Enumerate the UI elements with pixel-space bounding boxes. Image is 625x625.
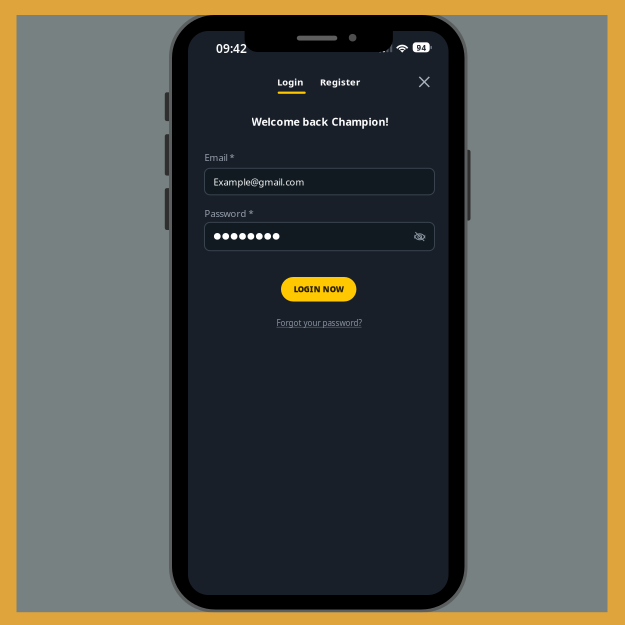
button[interactable]: Forgot your password?: [276, 317, 362, 328]
staticText: 94: [416, 42, 426, 53]
button[interactable]: Login: [276, 76, 305, 94]
staticText: Example@gmail.com: [213, 176, 304, 188]
button[interactable]: Show password: [412, 229, 428, 245]
staticText: LOGIN NOW: [294, 284, 344, 294]
button[interactable]: Close: [414, 72, 434, 92]
staticText: 09:42: [216, 40, 247, 56]
staticText: Password *: [204, 207, 253, 220]
staticText: Welcome back Champion!: [252, 115, 389, 129]
staticText: Register: [320, 76, 360, 88]
button[interactable]: Register: [319, 76, 361, 94]
staticText: Email *: [204, 151, 234, 164]
staticText: Login: [277, 76, 303, 88]
button[interactable]: LOGIN NOW: [281, 277, 356, 301]
staticText: Forgot your password?: [276, 318, 361, 328]
